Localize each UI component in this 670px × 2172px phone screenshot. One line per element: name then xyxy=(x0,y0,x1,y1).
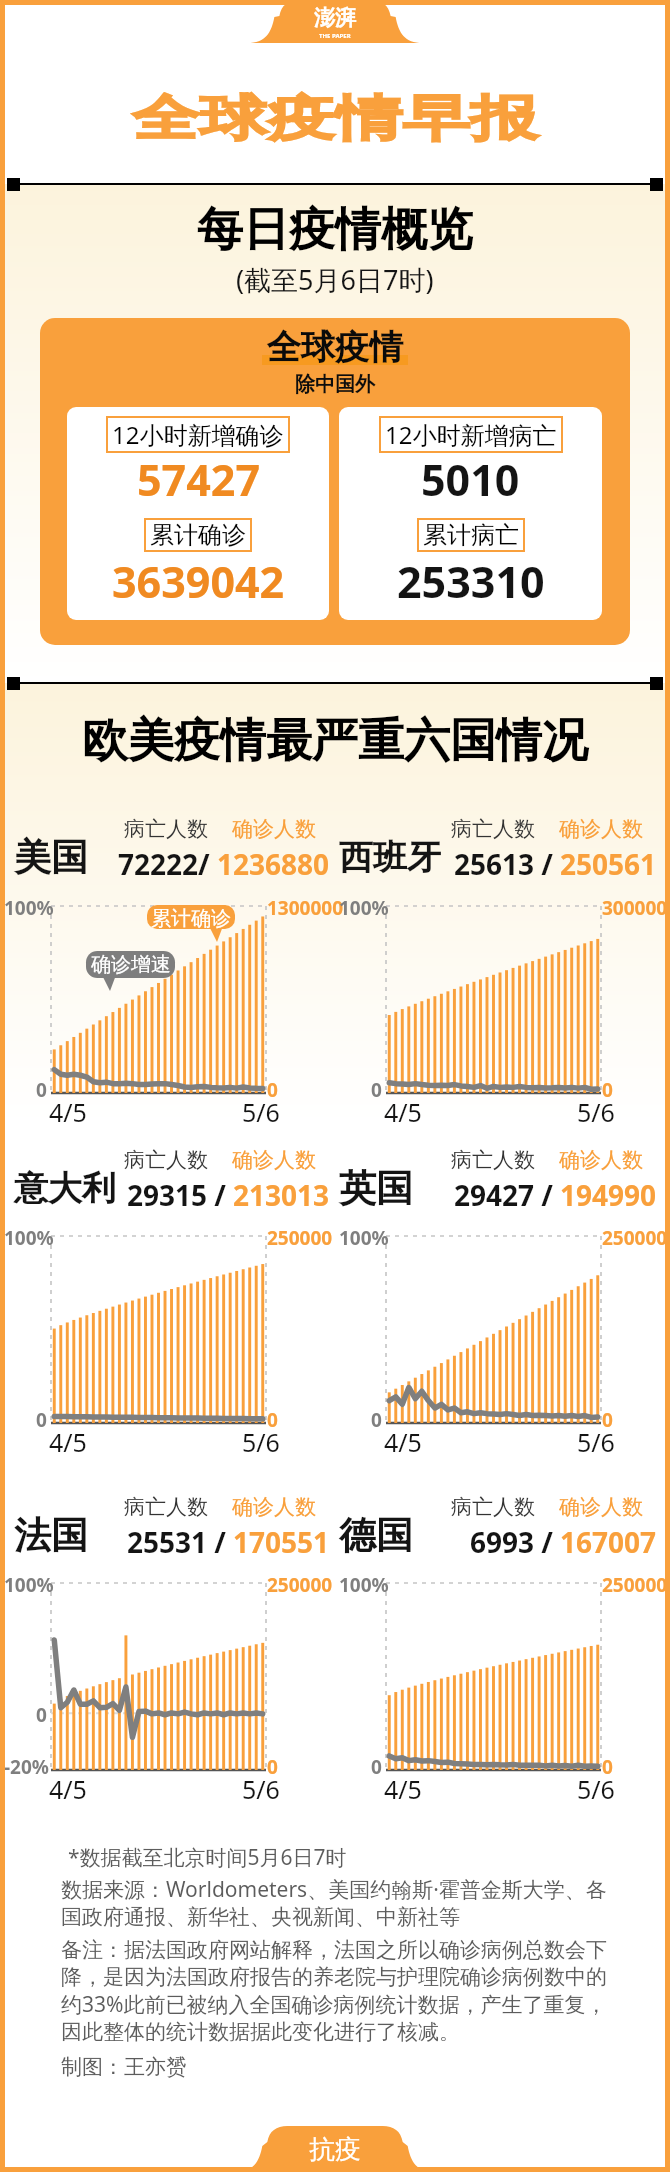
staticText: 12小时新增确诊 xyxy=(112,418,284,451)
staticText: 4/5 xyxy=(384,1772,422,1806)
staticText: 0 xyxy=(267,1407,278,1433)
staticText: 西班牙 xyxy=(339,836,441,879)
staticText: 美国 xyxy=(14,834,88,881)
staticText: 法国 xyxy=(14,1512,88,1559)
staticText: 确诊人数 xyxy=(232,1147,316,1173)
staticText: 0 xyxy=(267,1077,278,1103)
staticText: 4/5 xyxy=(384,1425,422,1459)
staticText: 0 xyxy=(371,1754,382,1780)
staticText: 除中国外 xyxy=(295,372,375,397)
staticText: 0 xyxy=(602,1077,613,1103)
staticText: 0 xyxy=(602,1754,613,1780)
staticText: 100% xyxy=(4,895,54,921)
staticText: 病亡人数 xyxy=(451,816,535,842)
staticText: 170551 xyxy=(233,1523,330,1561)
staticText: 250000 xyxy=(602,1225,668,1251)
staticText: 意大利 xyxy=(14,1167,116,1210)
staticText: 4/5 xyxy=(384,1095,422,1129)
staticText: 病亡人数 xyxy=(451,1147,535,1173)
staticText: 德国 xyxy=(339,1512,413,1559)
staticText: 0 xyxy=(602,1407,613,1433)
staticText: 12小时新增病亡 xyxy=(385,418,557,451)
staticText: 250000 xyxy=(267,1572,333,1598)
staticText: 确诊人数 xyxy=(232,1494,316,1520)
staticText: 0 xyxy=(371,1077,382,1103)
staticText: 5/6 xyxy=(577,1772,615,1806)
staticText: 澎湃 xyxy=(314,5,356,31)
staticText: 英国 xyxy=(339,1165,413,1212)
staticText: 100% xyxy=(4,1572,54,1598)
staticText: 253310 xyxy=(397,552,545,611)
staticText: 29315 / xyxy=(127,1176,226,1214)
staticText: 欧美疫情最严重六国情况 xyxy=(82,712,588,770)
staticText: 数据来源：Worldometers、美国约翰斯·霍普金斯大学、各国政府通报、新华… xyxy=(61,1875,609,1930)
staticText: 确诊人数 xyxy=(559,1494,643,1520)
staticText: 1236880 xyxy=(217,845,330,883)
staticText: 250000 xyxy=(267,1225,333,1251)
button[interactable]: 12小时新增病亡 xyxy=(339,407,602,620)
staticText: 3639042 xyxy=(112,552,285,611)
staticText: 全球疫情 xyxy=(267,326,403,369)
staticText: 100% xyxy=(339,895,389,921)
staticText: 5/6 xyxy=(577,1095,615,1129)
staticText: 0 xyxy=(36,1407,47,1433)
staticText: 4/5 xyxy=(49,1772,87,1806)
staticText: 1300000 xyxy=(267,895,344,921)
staticText: 5/6 xyxy=(577,1425,615,1459)
staticText: 5/6 xyxy=(242,1772,280,1806)
staticText: 300000 xyxy=(602,895,668,921)
staticText: 备注：据法国政府网站解释，法国之所以确诊病例总数会下降，是因为法国政府报告的养老… xyxy=(61,1937,609,2045)
staticText: 213013 xyxy=(233,1176,330,1214)
staticText: 5010 xyxy=(421,450,520,509)
staticText: 29427 / xyxy=(454,1176,553,1214)
staticText: 0 xyxy=(36,1077,47,1103)
button[interactable]: 全球疫情 xyxy=(40,318,630,645)
staticText: 0 xyxy=(371,1407,382,1433)
staticText: 病亡人数 xyxy=(124,816,208,842)
button[interactable]: The Paper logo xyxy=(0,0,670,47)
staticText: 病亡人数 xyxy=(451,1494,535,1520)
staticText: -20% xyxy=(4,1754,49,1780)
staticText: 病亡人数 xyxy=(124,1494,208,1520)
button[interactable]: 12小时新增确诊 xyxy=(67,407,329,620)
button[interactable]: 抗疫 tab xyxy=(0,2126,670,2172)
staticText: 累计确诊 xyxy=(151,906,231,931)
staticText: 100% xyxy=(4,1225,54,1251)
staticText: 累计病亡 xyxy=(423,520,519,550)
staticText: 确诊人数 xyxy=(232,816,316,842)
staticText: 250000 xyxy=(602,1572,668,1598)
staticText: 57427 xyxy=(137,450,260,509)
staticText: 每日疫情概览 xyxy=(197,201,473,259)
staticText: 250561 xyxy=(560,845,657,883)
staticText: 100% xyxy=(339,1572,389,1598)
staticText: 制图：王亦赟 xyxy=(61,2054,187,2080)
staticText: (截至5月6日7时) xyxy=(236,261,434,298)
staticText: 0 xyxy=(267,1754,278,1780)
staticText: THE PAPER xyxy=(319,32,351,40)
staticText: 全球疫情早报 xyxy=(132,88,538,150)
staticText: 167007 xyxy=(560,1523,657,1561)
staticText: 194990 xyxy=(560,1176,657,1214)
staticText: 确诊增速 xyxy=(91,952,171,977)
staticText: 5/6 xyxy=(242,1425,280,1459)
staticText: 25531 / xyxy=(127,1523,226,1561)
staticText: 0 xyxy=(36,1702,47,1728)
staticText: 100% xyxy=(339,1225,389,1251)
staticText: 累计确诊 xyxy=(150,520,246,550)
staticText: 25613 / xyxy=(454,845,553,883)
staticText: 4/5 xyxy=(49,1425,87,1459)
staticText: 确诊人数 xyxy=(559,816,643,842)
staticText: 72222/ xyxy=(118,845,210,883)
staticText: 5/6 xyxy=(242,1095,280,1129)
staticText: 确诊人数 xyxy=(559,1147,643,1173)
staticText: 6993 / xyxy=(470,1523,553,1561)
staticText: 4/5 xyxy=(49,1095,87,1129)
staticText: 病亡人数 xyxy=(124,1147,208,1173)
staticText: 抗疫 xyxy=(309,2133,361,2166)
staticText: *数据截至北京时间5月6日7时 xyxy=(68,1843,347,1872)
